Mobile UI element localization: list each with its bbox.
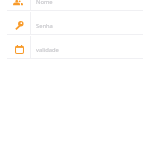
button[interactable]: Nome (0, 0, 150, 11)
button[interactable]: validade (0, 35, 150, 59)
staticText: Senha (36, 22, 53, 30)
button[interactable]: Senha (0, 11, 150, 35)
staticText: Nome (36, 0, 53, 6)
staticText: validade (36, 46, 59, 54)
